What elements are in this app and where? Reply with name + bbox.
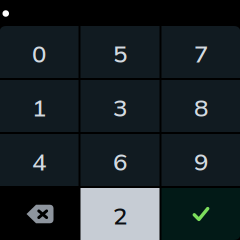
staticText: 1 [32,92,46,122]
button[interactable]: 6 [80,134,159,186]
button[interactable]: Delete [0,188,78,240]
button[interactable]: 9 [161,134,240,186]
staticText: 8 [194,92,208,122]
button[interactable]: Confirm [161,188,240,240]
button[interactable]: 0 [0,26,78,78]
button[interactable]: 7 [161,26,240,78]
staticText: 0 [32,38,46,68]
staticText: 4 [32,146,46,176]
button[interactable]: 5 [80,26,159,78]
staticText: 7 [194,38,208,68]
button[interactable]: 1 [0,80,78,132]
staticText: 3 [113,92,127,122]
staticText: 2 [113,200,127,230]
staticText: 6 [113,146,127,176]
staticText: 9 [194,146,208,176]
button[interactable]: 4 [0,134,78,186]
button[interactable]: 3 [80,80,159,132]
button[interactable]: 8 [161,80,240,132]
staticText: 5 [113,38,127,68]
button[interactable]: 2 [80,188,159,240]
